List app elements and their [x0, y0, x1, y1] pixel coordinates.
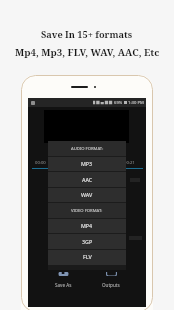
button[interactable]: FLV [48, 249, 126, 265]
staticText: 69% [114, 100, 123, 106]
staticText: MP4 [81, 222, 93, 229]
staticText: Mp4, Mp3, FLV, WAV, AAC, Etc [15, 46, 160, 59]
staticText: AAC [82, 176, 93, 183]
button[interactable]: MP4 [48, 218, 126, 234]
button[interactable]: Outputs [87, 265, 134, 293]
button[interactable]: VIDEO FORMAT: [48, 203, 126, 219]
staticText: VIDEO FORMAT: [71, 208, 103, 214]
staticText: 3GP [82, 238, 93, 245]
staticText: MP3 [81, 160, 93, 167]
button[interactable]: 3GP [48, 234, 126, 250]
staticText: 1:30 PM [128, 100, 144, 106]
staticText: 00:00 [35, 160, 46, 166]
button[interactable]: AUDIO FORMAT: [48, 141, 126, 157]
staticText: Outputs [102, 282, 120, 288]
staticText: FLV [83, 253, 92, 260]
button[interactable]: WAV [48, 187, 126, 203]
button[interactable]: Save As [40, 265, 87, 293]
staticText: Save In 15+ formats [41, 28, 133, 41]
staticText: 00:21 [124, 160, 135, 166]
staticText: WAV [81, 191, 93, 198]
button[interactable]: MP3 [48, 156, 126, 172]
button[interactable]: AAC [48, 172, 126, 188]
staticText: AUDIO FORMAT: [71, 146, 104, 152]
staticText: Save As [55, 282, 72, 288]
